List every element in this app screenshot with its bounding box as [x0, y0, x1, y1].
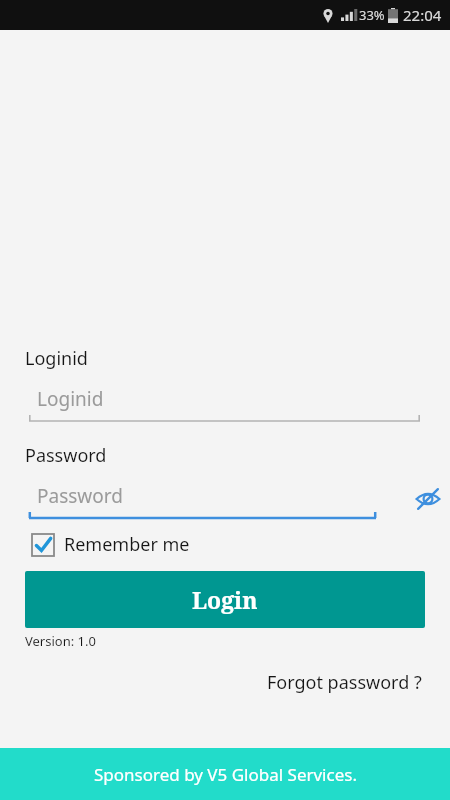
staticText: Version: 1.0 — [25, 632, 96, 650]
staticText: Password — [25, 443, 107, 468]
button[interactable]: Remember me — [32, 532, 190, 557]
staticText: Sponsored by V5 Global Services. — [94, 763, 357, 786]
button[interactable]: Forgot password ? — [0, 670, 450, 695]
staticText: 33% — [359, 6, 385, 24]
button[interactable]: Toggle password visibility — [406, 480, 450, 518]
button[interactable]: Loginid — [29, 383, 420, 421]
staticText: 22:04 — [403, 5, 442, 25]
staticText: Login — [192, 584, 258, 615]
staticText: Loginid — [25, 346, 88, 371]
staticText: Password — [37, 483, 123, 509]
staticText: Loginid — [37, 386, 104, 412]
button[interactable]: Login — [25, 571, 425, 628]
staticText: Forgot password ? — [267, 670, 422, 695]
staticText: Remember me — [64, 532, 190, 557]
button[interactable]: Password — [29, 480, 376, 518]
